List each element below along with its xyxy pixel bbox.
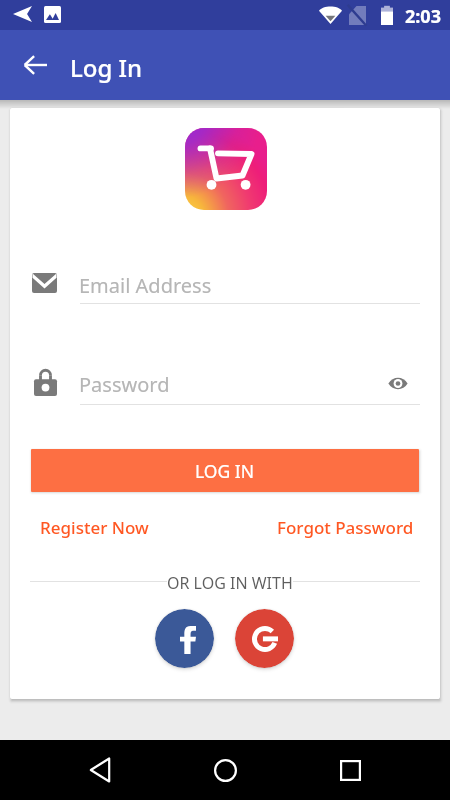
button[interactable]: Back — [80, 750, 120, 790]
staticText: Password — [79, 371, 170, 398]
button[interactable]: Show password — [385, 372, 411, 394]
staticText: Forgot Password — [277, 516, 414, 539]
staticText: Register Now — [40, 516, 149, 539]
button[interactable]: Back — [13, 42, 58, 87]
staticText: LOG IN — [195, 459, 255, 483]
staticText: OR LOG IN WITH — [167, 572, 293, 594]
staticText: Log In — [70, 51, 143, 84]
button[interactable]: Log in with Google — [235, 609, 294, 668]
button[interactable]: Home — [205, 750, 245, 790]
button[interactable]: Recents — [330, 750, 370, 790]
button[interactable]: LOG IN — [31, 449, 419, 492]
button[interactable]: Register Now — [40, 513, 149, 541]
button[interactable]: Log in with Facebook — [155, 609, 214, 668]
button[interactable]: Forgot Password — [277, 513, 414, 541]
staticText: Email Address — [79, 272, 212, 299]
staticText: 2:03 — [405, 4, 441, 29]
